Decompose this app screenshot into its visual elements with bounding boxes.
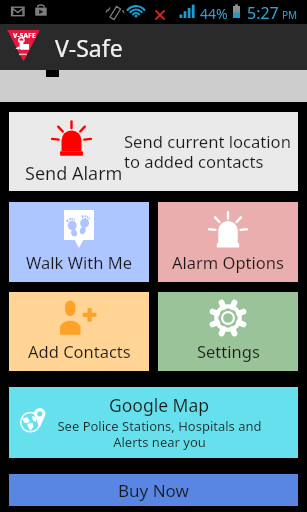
staticText: See Police Stations, Hospitals and Alert… [57, 417, 262, 450]
staticText: Alarm Options [172, 251, 284, 273]
staticText: PM [282, 8, 298, 22]
staticText: 5:27 [247, 2, 279, 24]
staticText: Settings [197, 340, 260, 362]
button[interactable]: Walk With Me [9, 202, 149, 282]
staticText: Send Alarm [25, 161, 123, 186]
button[interactable]: Google Map [9, 387, 298, 458]
staticText: 44% [200, 4, 228, 23]
staticText: Google Map [109, 393, 210, 417]
staticText: Send current location to added contacts [124, 130, 291, 173]
staticText: Buy Now [118, 479, 189, 502]
staticText: V-SAFE [13, 31, 36, 40]
staticText: Add Contacts [28, 340, 131, 362]
button[interactable]: Alarm Options [158, 202, 298, 282]
button[interactable]: Add Contacts [9, 292, 149, 371]
staticText: V-Safe [55, 32, 123, 63]
staticText: Walk With Me [26, 251, 132, 273]
button[interactable]: Settings [158, 292, 298, 371]
button[interactable]: Send Alarm [9, 112, 298, 191]
button[interactable]: Buy Now [9, 474, 298, 506]
